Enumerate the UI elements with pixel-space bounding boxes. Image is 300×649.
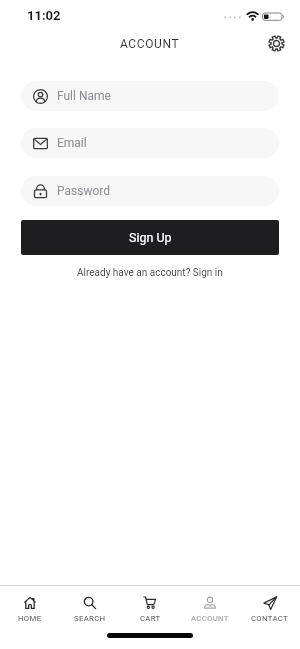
staticText: CONTACT xyxy=(251,614,289,623)
button[interactable]: Email xyxy=(21,128,279,158)
staticText: Already have an account? Sign in xyxy=(77,267,223,279)
button[interactable]: ACCOUNT xyxy=(180,586,240,649)
staticText: ACCOUNT xyxy=(191,614,229,623)
staticText: SEARCH xyxy=(74,614,106,623)
button[interactable]: HOME xyxy=(0,586,60,649)
button[interactable]: SEARCH xyxy=(60,586,120,649)
button[interactable] xyxy=(262,29,290,57)
button[interactable]: CONTACT xyxy=(240,586,300,649)
staticText: Sign Up xyxy=(129,230,172,245)
button[interactable]: CART xyxy=(120,586,180,649)
staticText: Full Name xyxy=(57,89,111,103)
staticText: Email xyxy=(57,136,87,150)
staticText: Password xyxy=(57,184,111,198)
button[interactable]: Password xyxy=(21,176,279,206)
staticText: CART xyxy=(140,614,161,623)
button[interactable]: Full Name xyxy=(21,81,279,111)
staticText: HOME xyxy=(18,614,42,623)
button[interactable]: Sign Up xyxy=(21,220,279,255)
staticText: ACCOUNT xyxy=(120,37,180,51)
staticText: 11:02 xyxy=(27,8,61,23)
button[interactable]: Already have an account? Sign in xyxy=(0,267,300,279)
